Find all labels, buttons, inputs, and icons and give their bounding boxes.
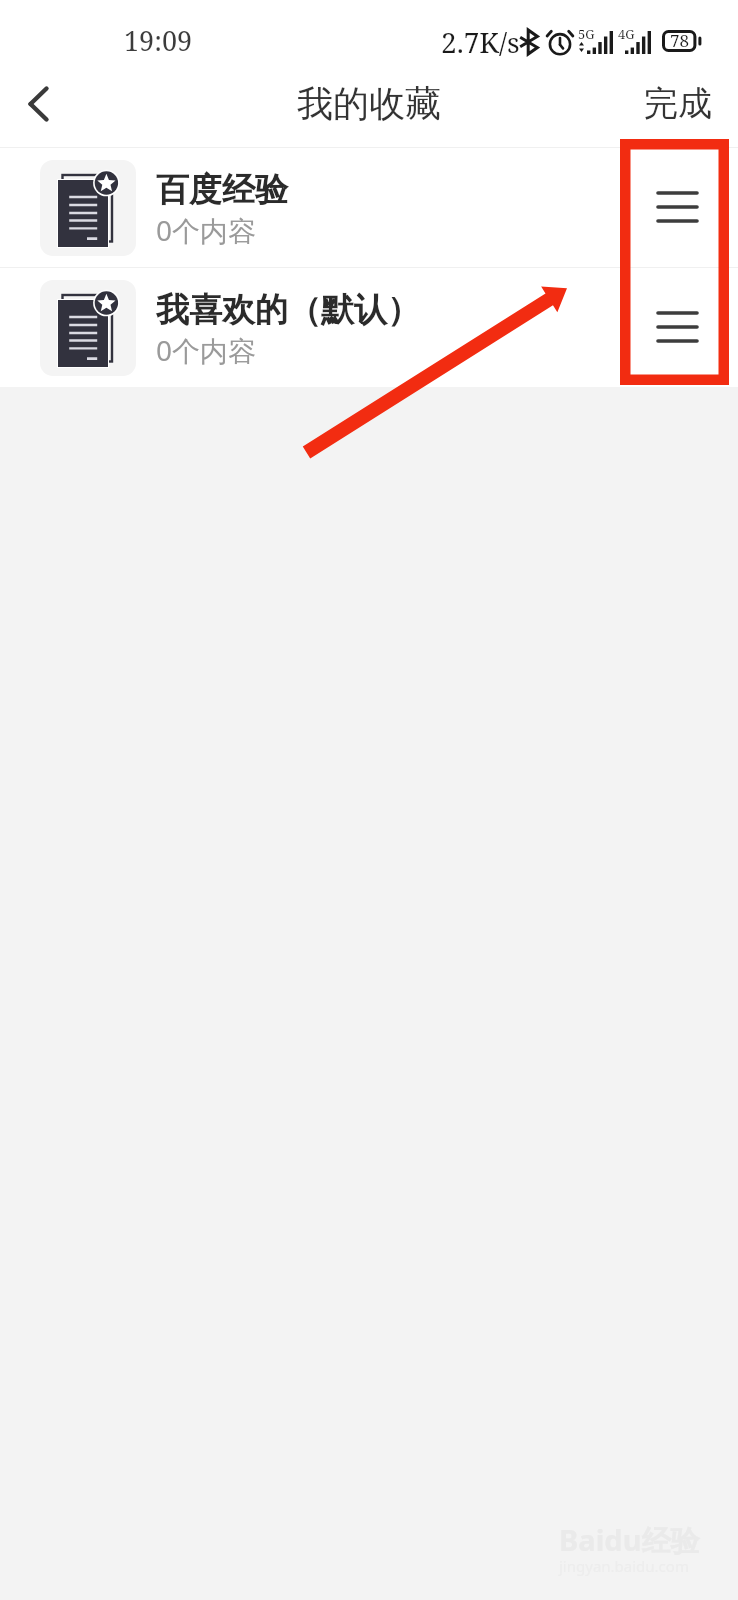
button[interactable]: Reorder [613,268,738,387]
staticText: 2.7K/s [441,23,520,61]
staticText: 0个内容 [156,211,257,249]
staticText: 4G [618,25,635,43]
button[interactable]: 百度经验 [0,148,738,267]
staticText: 百度经验 [156,169,288,211]
staticText: 5G [578,25,595,43]
button[interactable]: 我喜欢的（默认） [0,268,738,387]
staticText: Baidu经验 [559,1520,700,1560]
button[interactable]: Back [0,60,78,147]
button[interactable]: Reorder [613,148,738,267]
staticText: 0个内容 [156,331,257,369]
staticText: 78 [670,29,690,51]
button[interactable]: 完成 [644,60,712,147]
staticText: 完成 [644,82,712,125]
staticText: 19:09 [124,22,193,59]
staticText: 我喜欢的（默认） [156,289,420,331]
staticText: 我的收藏 [297,81,441,126]
